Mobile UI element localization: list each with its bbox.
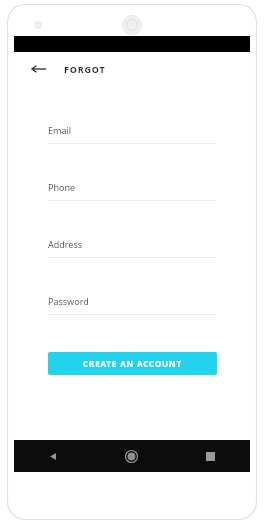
button[interactable]: Email: [48, 124, 217, 144]
button[interactable]: Home: [92, 440, 171, 472]
staticText: CREATE AN ACCOUNT: [83, 358, 182, 369]
staticText: Phone: [48, 181, 76, 193]
button[interactable]: Back: [14, 440, 92, 472]
staticText: Password: [48, 295, 89, 307]
button[interactable]: CREATE AN ACCOUNT: [48, 352, 217, 375]
staticText: Address: [48, 238, 83, 250]
button[interactable]: Recent apps: [171, 440, 250, 472]
staticText: Email: [48, 124, 72, 136]
staticText: FORGOT: [64, 63, 106, 75]
button[interactable]: Address: [48, 238, 217, 258]
button[interactable]: Back: [28, 58, 50, 80]
button[interactable]: Password: [48, 295, 217, 315]
button[interactable]: Phone: [48, 181, 217, 201]
